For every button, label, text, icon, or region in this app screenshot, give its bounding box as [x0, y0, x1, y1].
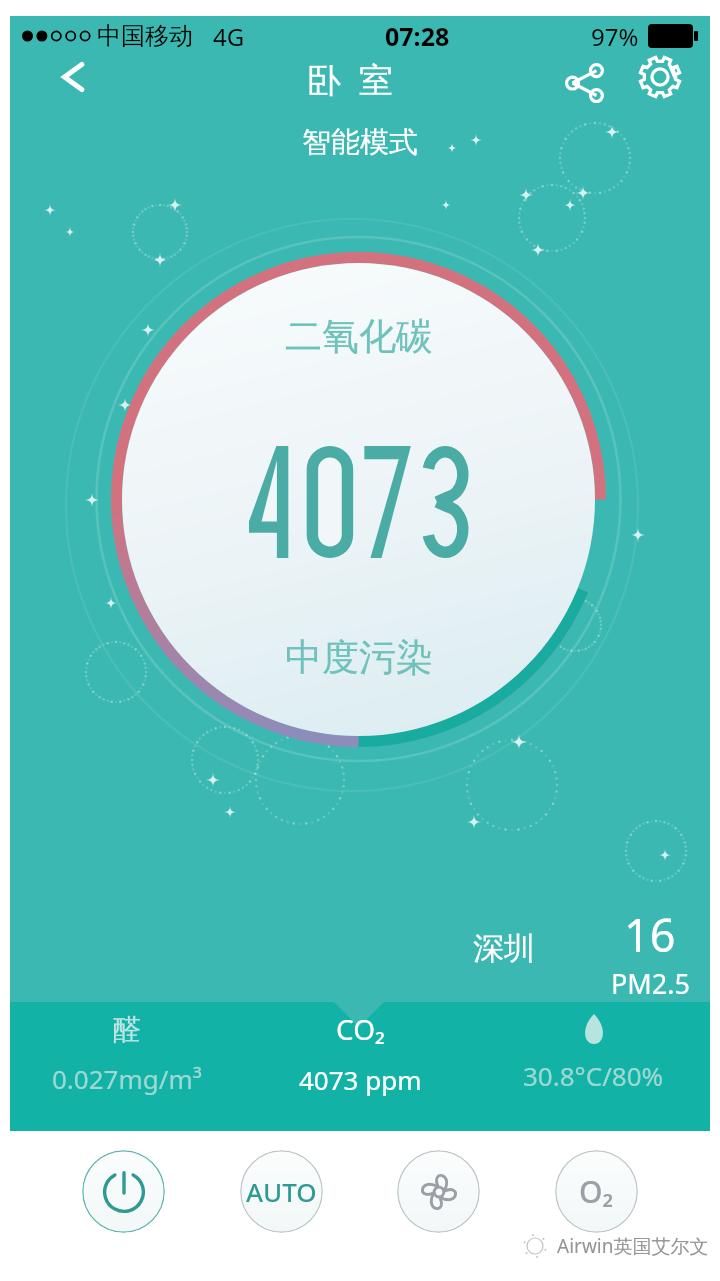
staticText: 卧 室	[307, 56, 393, 98]
staticText: Airwin英国艾尔文	[557, 1233, 709, 1259]
button[interactable]: Power	[82, 1150, 165, 1233]
button[interactable]: Back	[46, 56, 102, 98]
staticText: AUTO	[246, 1174, 317, 1209]
staticText: 中度污染	[285, 634, 433, 681]
staticText: 30.8°C/80%	[523, 1058, 664, 1093]
staticText: 97%	[591, 20, 639, 53]
button[interactable]: CO₂	[244, 1002, 477, 1131]
button[interactable]: 醛	[10, 1002, 244, 1131]
button[interactable]: Oxygen	[555, 1150, 638, 1233]
staticText: 4G	[213, 20, 245, 53]
staticText: 二氧化碳	[285, 313, 433, 360]
staticText: PM2.5	[611, 965, 690, 1002]
staticText: O₂	[579, 1171, 614, 1212]
button[interactable]: Fan speed	[397, 1150, 480, 1233]
staticText: 16	[624, 904, 676, 965]
button[interactable]: Share	[559, 56, 611, 98]
staticText: 深圳	[473, 929, 535, 968]
staticText: CO₂	[336, 1010, 385, 1048]
staticText: 醛	[113, 1012, 141, 1047]
staticText: 0.027mg/m³	[52, 1061, 202, 1096]
button[interactable]: 30.8°C/80%	[477, 1002, 710, 1131]
button[interactable]: Auto mode	[240, 1150, 323, 1233]
staticText: 07:28	[385, 19, 450, 53]
button[interactable]: Settings	[634, 56, 686, 98]
staticText: 中国移动	[97, 21, 193, 51]
staticText: 4073 ppm	[299, 1062, 422, 1097]
staticText: 智能模式	[302, 124, 418, 161]
